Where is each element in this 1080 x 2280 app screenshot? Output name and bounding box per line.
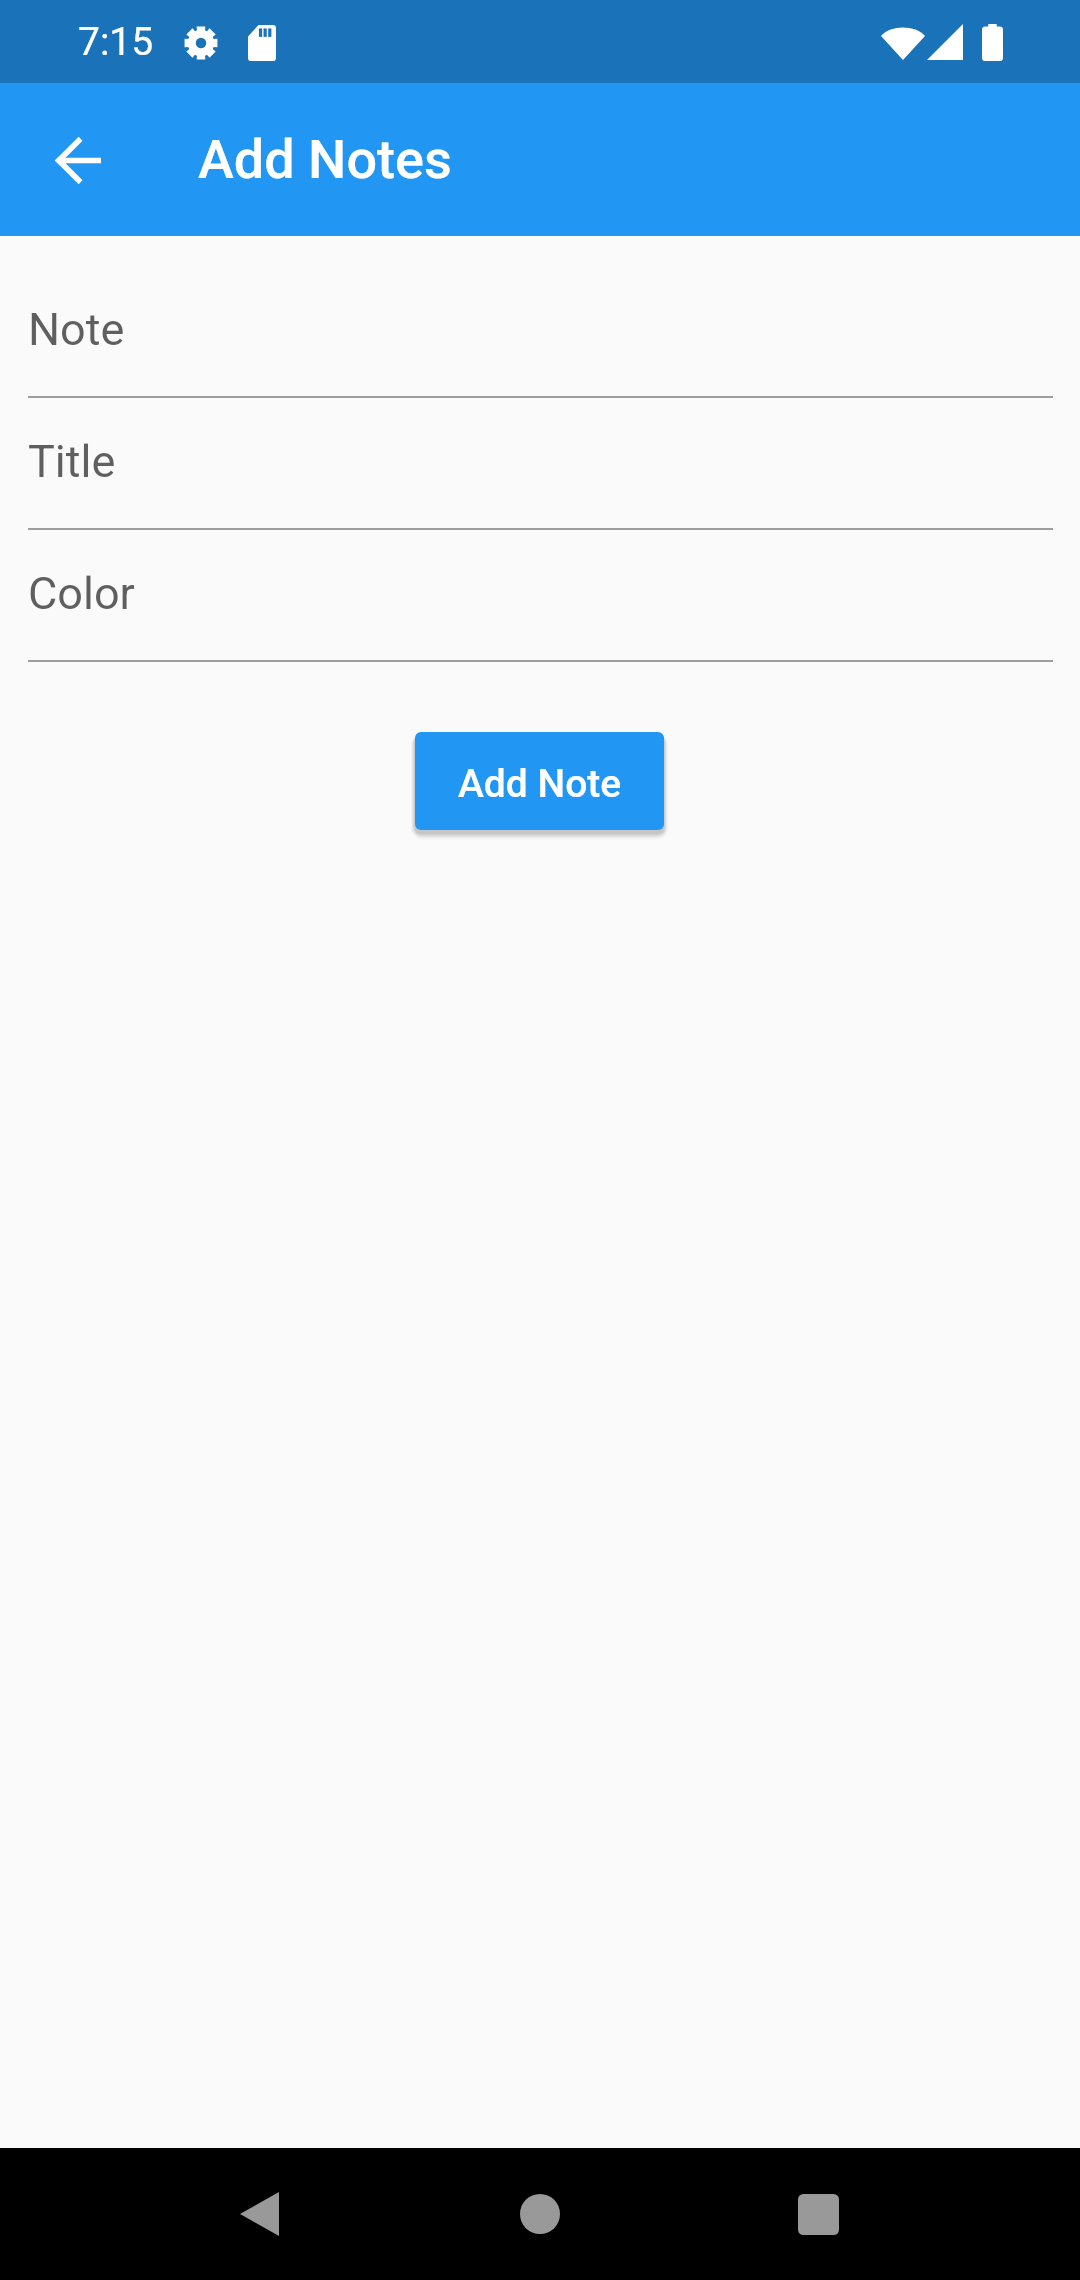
- staticText: 7:15: [78, 19, 154, 65]
- button[interactable]: Home: [450, 2148, 630, 2280]
- button[interactable]: Recent apps: [728, 2148, 908, 2280]
- staticText: Color: [28, 567, 135, 620]
- button[interactable]: Note: [0, 265, 1080, 397]
- staticText: Add Note: [458, 761, 622, 807]
- staticText: Add Notes: [198, 128, 452, 191]
- button[interactable]: Title: [0, 397, 1080, 529]
- button[interactable]: Navigate up: [33, 115, 123, 205]
- button[interactable]: Add Note: [415, 732, 664, 830]
- staticText: Note: [28, 303, 125, 356]
- staticText: Title: [28, 435, 116, 488]
- button[interactable]: Color: [0, 529, 1080, 661]
- button[interactable]: Back: [169, 2148, 349, 2280]
